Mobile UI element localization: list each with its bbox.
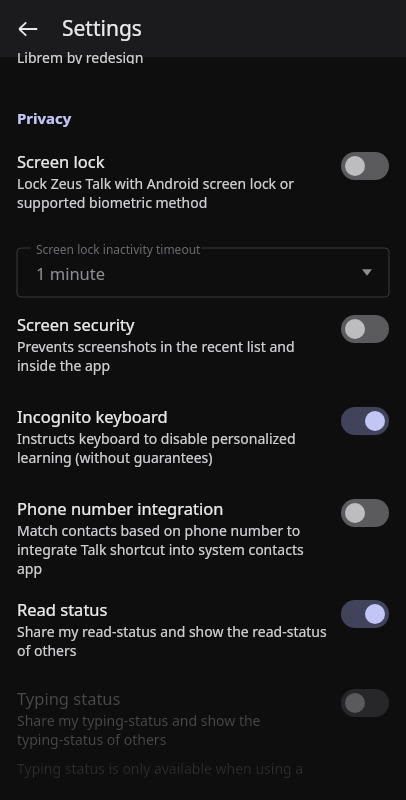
staticText: Prevents screenshots in the recent list … [17,337,295,375]
staticText: Share my read-status and show the read-s… [17,622,327,660]
button[interactable]: Screen lock [0,150,406,212]
staticText: Instructs keyboard to disable personaliz… [17,429,296,467]
button[interactable]: Typing status [0,687,406,749]
staticText: Incognito keyboard [17,405,168,427]
button[interactable]: On [341,600,389,628]
staticText: Typing status is only available when usi… [17,759,304,778]
button[interactable]: On [341,407,389,435]
staticText: 1 minute [36,262,106,284]
staticText: Match contacts based on phone number to … [17,521,304,578]
button[interactable]: Screen security [0,307,406,375]
staticText: Phone number integration [17,497,224,519]
button[interactable]: Back [8,9,48,49]
button[interactable]: Read status [0,598,406,660]
staticText: Screen security [17,313,135,335]
button[interactable]: Off [341,499,389,527]
staticText: Privacy [17,108,72,128]
button[interactable]: Screen lock inactivity timeout [17,241,389,297]
staticText: Screen lock inactivity timeout [36,241,201,257]
staticText: Settings [62,14,142,43]
staticText: Typing status [17,687,121,709]
staticText: Share my typing-status and show the typi… [17,711,261,749]
button[interactable]: Incognito keyboard [0,405,406,467]
staticText: Read status [17,598,108,620]
button[interactable]: Phone number integration [0,497,406,578]
button[interactable]: Off [341,689,389,717]
staticText: Lock Zeus Talk with Android screen lock … [17,174,294,212]
staticText: Screen lock [17,150,105,172]
button[interactable]: Off [341,315,389,343]
staticText: Librem by redesign [17,48,144,64]
button[interactable]: Off [341,152,389,180]
